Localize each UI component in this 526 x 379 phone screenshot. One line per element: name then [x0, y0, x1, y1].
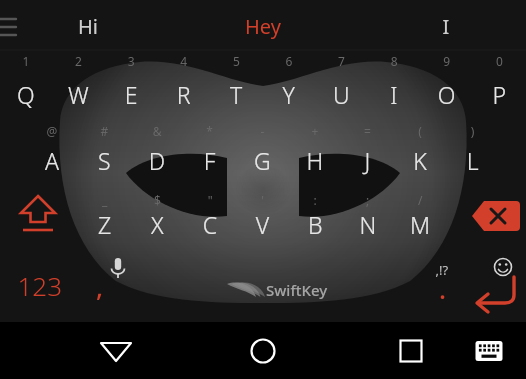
button[interactable] — [473, 50, 526, 111]
button[interactable] — [341, 111, 394, 163]
button[interactable] — [235, 163, 288, 221]
button[interactable] — [341, 163, 394, 221]
button[interactable] — [78, 111, 130, 163]
button[interactable] — [288, 111, 341, 163]
button[interactable] — [52, 50, 104, 111]
button[interactable] — [288, 163, 341, 221]
button[interactable] — [394, 163, 447, 221]
button[interactable]: Recent apps — [313, 279, 455, 379]
button[interactable]: Hide keyboard — [0, 279, 171, 379]
button[interactable] — [198, 0, 362, 50]
button[interactable]: Home — [171, 279, 313, 379]
button[interactable] — [104, 50, 156, 111]
button[interactable]: Switch keyboard — [455, 279, 526, 379]
button[interactable] — [34, 0, 198, 50]
button[interactable] — [156, 50, 208, 111]
button[interactable] — [447, 111, 500, 163]
button[interactable] — [26, 111, 78, 163]
button[interactable] — [0, 50, 52, 111]
button[interactable]: Keyboard menu — [0, 0, 34, 50]
button[interactable]: Space — [132, 221, 394, 279]
button[interactable] — [362, 0, 526, 50]
button[interactable]: Numbers and symbols — [0, 221, 79, 279]
button[interactable] — [183, 163, 235, 221]
button[interactable] — [130, 111, 182, 163]
button[interactable] — [314, 50, 367, 111]
button[interactable] — [235, 111, 288, 163]
button[interactable] — [182, 111, 235, 163]
button[interactable]: Shift — [0, 163, 79, 221]
button[interactable]: Comma, voice input — [79, 221, 132, 279]
button[interactable]: Enter — [447, 221, 526, 279]
button[interactable] — [208, 50, 261, 111]
button[interactable] — [131, 163, 183, 221]
button[interactable]: Backspace — [447, 163, 526, 221]
button[interactable]: Period — [394, 221, 447, 279]
button[interactable] — [79, 163, 131, 221]
button[interactable] — [420, 50, 473, 111]
button[interactable] — [367, 50, 420, 111]
button[interactable] — [261, 50, 314, 111]
button[interactable] — [394, 111, 447, 163]
